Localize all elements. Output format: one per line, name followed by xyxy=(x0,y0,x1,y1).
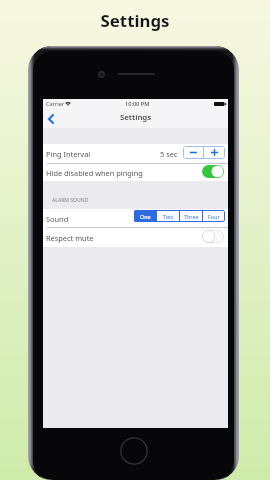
button[interactable]: Three xyxy=(180,210,202,222)
staticText: Hide disabled when pinging xyxy=(46,168,143,178)
button[interactable]: Increase xyxy=(204,146,225,159)
button[interactable]: One xyxy=(134,210,156,222)
staticText: Three xyxy=(184,213,199,220)
staticText: Respect mute xyxy=(46,233,94,243)
button[interactable]: Four xyxy=(203,210,225,222)
staticText: 10:00 PM xyxy=(125,100,150,108)
button[interactable]: Respect mute xyxy=(43,228,228,247)
staticText: ALARM SOUND xyxy=(52,197,89,204)
staticText: Settings xyxy=(120,112,152,123)
button[interactable]: Enabled xyxy=(202,165,224,178)
button[interactable]: Hide disabled when pinging xyxy=(43,164,228,181)
staticText: Two xyxy=(163,213,174,220)
button[interactable]: Back xyxy=(43,109,59,128)
staticText: Ping Interval xyxy=(46,149,91,159)
button[interactable]: Disabled xyxy=(202,230,224,243)
staticText: Settings xyxy=(0,9,270,32)
button[interactable]: Ping Interval xyxy=(43,144,228,164)
button[interactable]: Sound xyxy=(43,209,228,228)
staticText: One xyxy=(140,213,151,220)
staticText: Sound xyxy=(46,214,69,224)
button[interactable]: Decrease xyxy=(183,146,203,159)
staticText: Carrier xyxy=(46,100,65,108)
staticText: 5 sec xyxy=(160,149,178,159)
button[interactable]: Two xyxy=(157,210,179,222)
staticText: Four xyxy=(208,213,220,220)
